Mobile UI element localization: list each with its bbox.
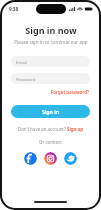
staticText: 9:38 — [9, 6, 18, 12]
staticText: Password — [16, 76, 36, 82]
staticText: Sign up — [67, 126, 84, 132]
staticText: Don't have an account? — [18, 126, 67, 132]
button[interactable]: Password — [11, 73, 90, 84]
staticText: Sign in — [42, 108, 60, 115]
staticText: Sign in now — [25, 24, 77, 36]
button[interactable]: Sign in with Twitter — [64, 152, 77, 165]
button[interactable]: Email — [11, 56, 90, 67]
staticText: Email — [16, 59, 28, 65]
button[interactable]: Sign in with Facebook — [24, 152, 37, 165]
button[interactable]: Sign in — [11, 105, 90, 118]
button[interactable]: Sign in with Instagram — [44, 152, 57, 165]
button[interactable]: Forgot password? — [50, 88, 90, 96]
staticText: Or connect — [39, 139, 62, 145]
staticText: Please sign in to continue our app — [14, 39, 88, 45]
staticText: Forgot password? — [51, 89, 89, 95]
button[interactable]: Don't have an account? — [17, 125, 85, 133]
